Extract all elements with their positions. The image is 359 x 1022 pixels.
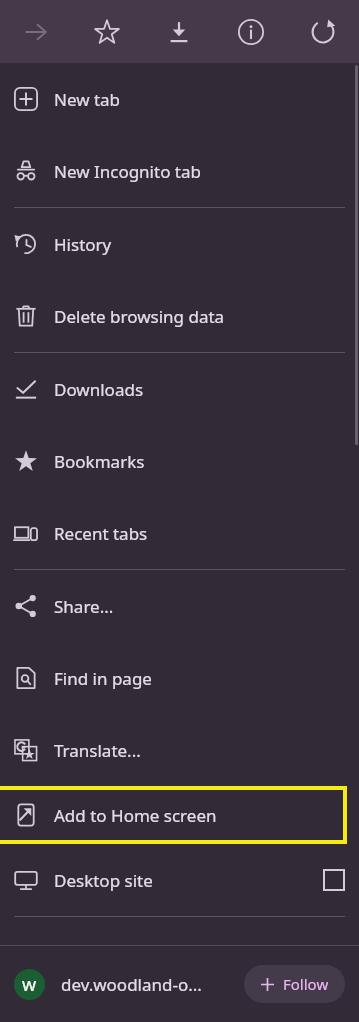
button[interactable]: Translate...	[0, 714, 359, 786]
button[interactable]: Find in page	[0, 642, 359, 714]
staticText: New tab	[54, 88, 345, 111]
button[interactable]: Share...	[0, 570, 359, 642]
staticText: New Incognito tab	[54, 160, 345, 183]
staticText: Follow	[283, 974, 329, 994]
staticText: Translate...	[54, 739, 345, 762]
staticText: Downloads	[54, 378, 345, 401]
staticText: Delete browsing data	[54, 305, 345, 328]
button[interactable]: Recent tabs	[0, 497, 359, 569]
button[interactable]: Delete browsing data	[0, 280, 359, 352]
staticText: Desktop site	[54, 869, 323, 892]
button[interactable]: Desktop site	[0, 844, 359, 916]
button[interactable]: Page info	[215, 0, 287, 63]
button[interactable]: Add to Home screen	[0, 786, 359, 844]
staticText: Add to Home screen	[54, 804, 217, 827]
button[interactable]: Download page	[143, 0, 215, 63]
staticText: W	[22, 975, 37, 995]
staticText: Bookmarks	[54, 450, 345, 473]
staticText: Recent tabs	[54, 522, 345, 545]
button[interactable]: Forward	[0, 0, 71, 63]
button[interactable]: Downloads	[0, 353, 359, 425]
button[interactable]: Follow	[244, 965, 345, 1003]
button[interactable]: Bookmarks	[0, 425, 359, 497]
button[interactable]: New tab	[0, 63, 359, 135]
button[interactable]: Bookmark	[71, 0, 143, 63]
staticText: History	[54, 233, 345, 256]
button[interactable]: History	[0, 208, 359, 280]
staticText: dev.woodland-o...	[61, 973, 236, 996]
staticText: Share...	[54, 595, 345, 618]
button[interactable]: Reload	[287, 0, 359, 63]
staticText: Find in page	[54, 667, 345, 690]
button[interactable]: New Incognito tab	[0, 135, 359, 207]
